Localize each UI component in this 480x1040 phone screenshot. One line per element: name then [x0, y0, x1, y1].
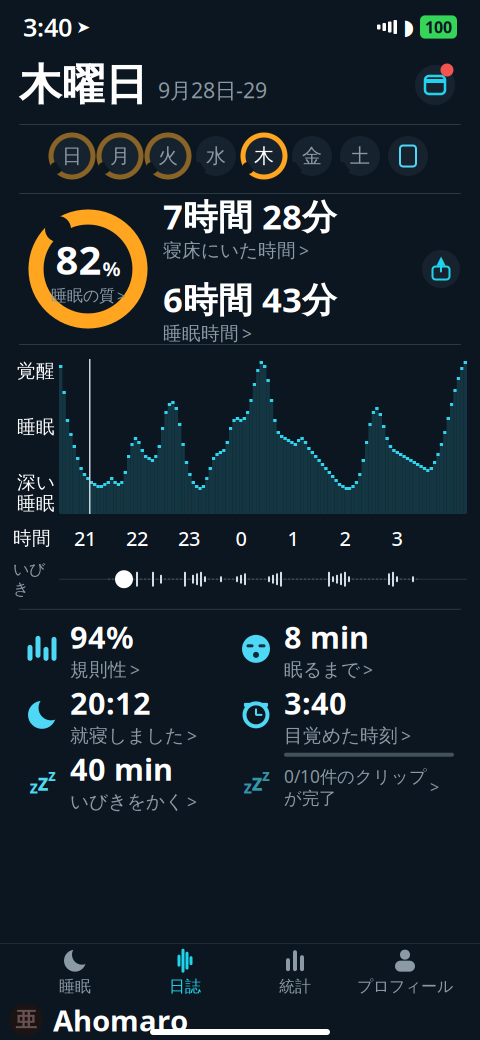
button[interactable]: 火	[144, 132, 192, 180]
staticText: z	[243, 775, 252, 798]
staticText: 0	[235, 525, 246, 552]
button[interactable]: 土	[336, 132, 384, 180]
button[interactable]: 水	[192, 132, 240, 180]
button[interactable]: Calendar	[409, 59, 461, 111]
staticText: 睡眠	[17, 416, 55, 438]
staticText: 眠るまで	[284, 658, 360, 681]
button[interactable]: 睡眠	[20, 946, 130, 998]
staticText: 木	[254, 144, 274, 168]
staticText: 目覚めた時刻	[284, 724, 398, 747]
staticText: Ahomaro	[53, 1000, 188, 1039]
button[interactable]: z	[26, 748, 240, 814]
staticText: 0/10件のクリップが完了	[284, 765, 427, 809]
staticText: >	[299, 239, 309, 262]
staticText: z	[29, 775, 38, 798]
button[interactable]: 3:40	[240, 682, 454, 748]
staticText: 1	[287, 525, 298, 552]
staticText: 木曜日	[19, 59, 148, 111]
staticText: 水	[206, 144, 226, 168]
button[interactable]: 木	[240, 132, 288, 180]
staticText: ▲	[436, 253, 445, 267]
staticText: z	[37, 767, 48, 797]
staticText: 20:12	[70, 682, 151, 723]
button[interactable]: 日	[48, 132, 96, 180]
staticText: 寝床にいた時間	[163, 239, 296, 262]
staticText: 23	[178, 525, 200, 552]
button[interactable]: 金	[288, 132, 336, 180]
button[interactable]: Share	[415, 243, 467, 295]
button[interactable]: z	[240, 748, 454, 814]
staticText: 睡眠時間	[163, 322, 239, 345]
staticText: z	[48, 764, 56, 785]
staticText: 100	[425, 16, 452, 38]
staticText: 月	[110, 144, 130, 168]
staticText: >	[401, 724, 411, 747]
staticText: 統計	[279, 977, 311, 996]
staticText: 3	[391, 525, 402, 552]
staticText: 7時間 28分	[163, 193, 337, 239]
staticText: 9月28日-29	[158, 76, 267, 104]
staticText: 睡眠の質	[51, 286, 115, 305]
staticText: 就寝しました	[70, 724, 184, 747]
staticText: 22	[126, 525, 148, 552]
staticText: ➤	[76, 17, 91, 37]
staticText: 火	[158, 144, 178, 168]
button[interactable]: 20:12	[26, 682, 240, 748]
button[interactable]: 6時間 43分	[163, 276, 353, 345]
button[interactable]: 94%	[26, 616, 240, 682]
staticText: 日	[62, 144, 82, 168]
staticText: >	[130, 658, 140, 681]
staticText: 亜	[15, 1007, 36, 1033]
staticText: 金	[302, 144, 322, 168]
staticText: いびき	[13, 560, 45, 599]
button[interactable]: プロフィール	[350, 946, 460, 998]
staticText: z	[251, 767, 262, 797]
staticText: >	[117, 286, 125, 305]
staticText: 8 min	[284, 616, 369, 657]
staticText: プロフィール	[357, 977, 453, 996]
staticText: 睡眠	[17, 492, 55, 515]
staticText: 94%	[70, 616, 134, 657]
staticText: 3:40	[284, 682, 347, 723]
staticText: 時間	[13, 527, 51, 550]
staticText: 日誌	[169, 977, 201, 996]
staticText: いびきをかく	[70, 790, 184, 813]
staticText: z	[262, 764, 270, 785]
staticText: >	[363, 658, 373, 681]
staticText: 睡眠	[59, 977, 91, 996]
staticText: >	[187, 724, 197, 747]
button[interactable]: 7時間 28分	[163, 193, 353, 262]
staticText: 40 min	[70, 748, 173, 789]
staticText: 深い	[17, 471, 55, 494]
staticText: ◗	[403, 15, 414, 39]
staticText: 覚醒	[17, 359, 55, 382]
button[interactable]: Notes	[384, 132, 432, 180]
button[interactable]: 月	[96, 132, 144, 180]
staticText: >	[242, 322, 252, 345]
button[interactable]: 日誌	[130, 946, 240, 998]
staticText: >	[430, 776, 439, 797]
staticText: 2	[339, 525, 350, 552]
staticText: 6時間 43分	[163, 276, 337, 322]
staticText: 21	[74, 525, 96, 552]
button[interactable]: 統計	[240, 946, 350, 998]
staticText: 82	[55, 233, 101, 286]
staticText: 3:40	[23, 10, 72, 44]
staticText: %	[102, 255, 120, 282]
button[interactable]: 8 min	[240, 616, 454, 682]
staticText: >	[187, 790, 197, 813]
staticText: 土	[350, 144, 370, 168]
staticText: 規則性	[70, 658, 127, 681]
